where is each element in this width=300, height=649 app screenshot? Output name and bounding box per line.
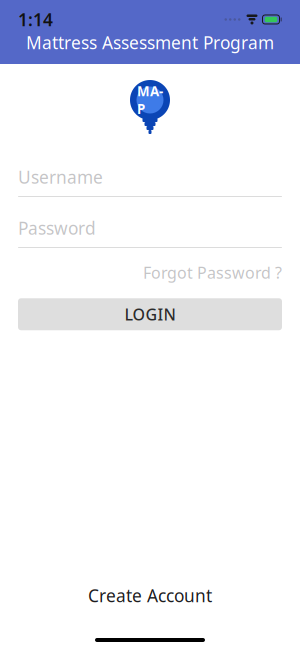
- button[interactable]: Forgot Password ?: [143, 258, 282, 287]
- staticText: Mattress Assessment Program: [26, 31, 274, 54]
- button[interactable]: Create Account: [78, 578, 222, 613]
- button[interactable]: LOGIN: [18, 298, 282, 330]
- staticText: Create Account: [88, 584, 212, 607]
- staticText: Username: [18, 165, 103, 188]
- staticText: LOGIN: [124, 304, 175, 325]
- staticText: Forgot Password ?: [143, 262, 282, 283]
- staticText: MAP: [137, 82, 163, 118]
- staticText: Password: [18, 216, 96, 239]
- staticText: 1:14: [18, 8, 53, 31]
